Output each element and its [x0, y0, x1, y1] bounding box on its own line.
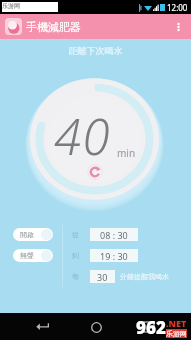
button[interactable]: Back	[30, 315, 54, 339]
button[interactable]: More options	[170, 19, 186, 35]
staticText: 40	[54, 103, 111, 170]
staticText: 19 : 30	[100, 250, 128, 262]
button[interactable]: 08 : 30	[90, 228, 138, 241]
staticText: 距離下次喝水	[0, 45, 191, 56]
button[interactable]: 無聲	[13, 249, 53, 262]
button[interactable]: Reset timer	[86, 163, 104, 181]
staticText: 乐游网 www.962.net	[2, 2, 58, 12]
staticText: 分鐘提醒我喝水	[120, 272, 169, 281]
staticText: 手機減肥器	[26, 20, 81, 34]
staticText: 30	[97, 271, 108, 283]
button[interactable]: 30	[90, 270, 115, 283]
staticText: 從	[72, 230, 90, 239]
staticText: 12:00	[167, 2, 188, 13]
staticText: 每	[72, 272, 90, 281]
button[interactable]: Home	[84, 315, 108, 339]
staticText: 開啟	[20, 230, 34, 239]
staticText: min	[117, 146, 136, 160]
staticText: 到	[72, 251, 90, 260]
staticText: .NET	[166, 317, 187, 329]
button[interactable]: 開啟	[13, 228, 53, 241]
button[interactable]: 19 : 30	[90, 249, 138, 262]
staticText: 乐游网	[166, 329, 187, 338]
staticText: 962	[136, 316, 166, 338]
staticText: 無聲	[20, 251, 34, 260]
staticText: 08 : 30	[100, 229, 128, 241]
button[interactable]: Recent apps	[137, 315, 161, 339]
